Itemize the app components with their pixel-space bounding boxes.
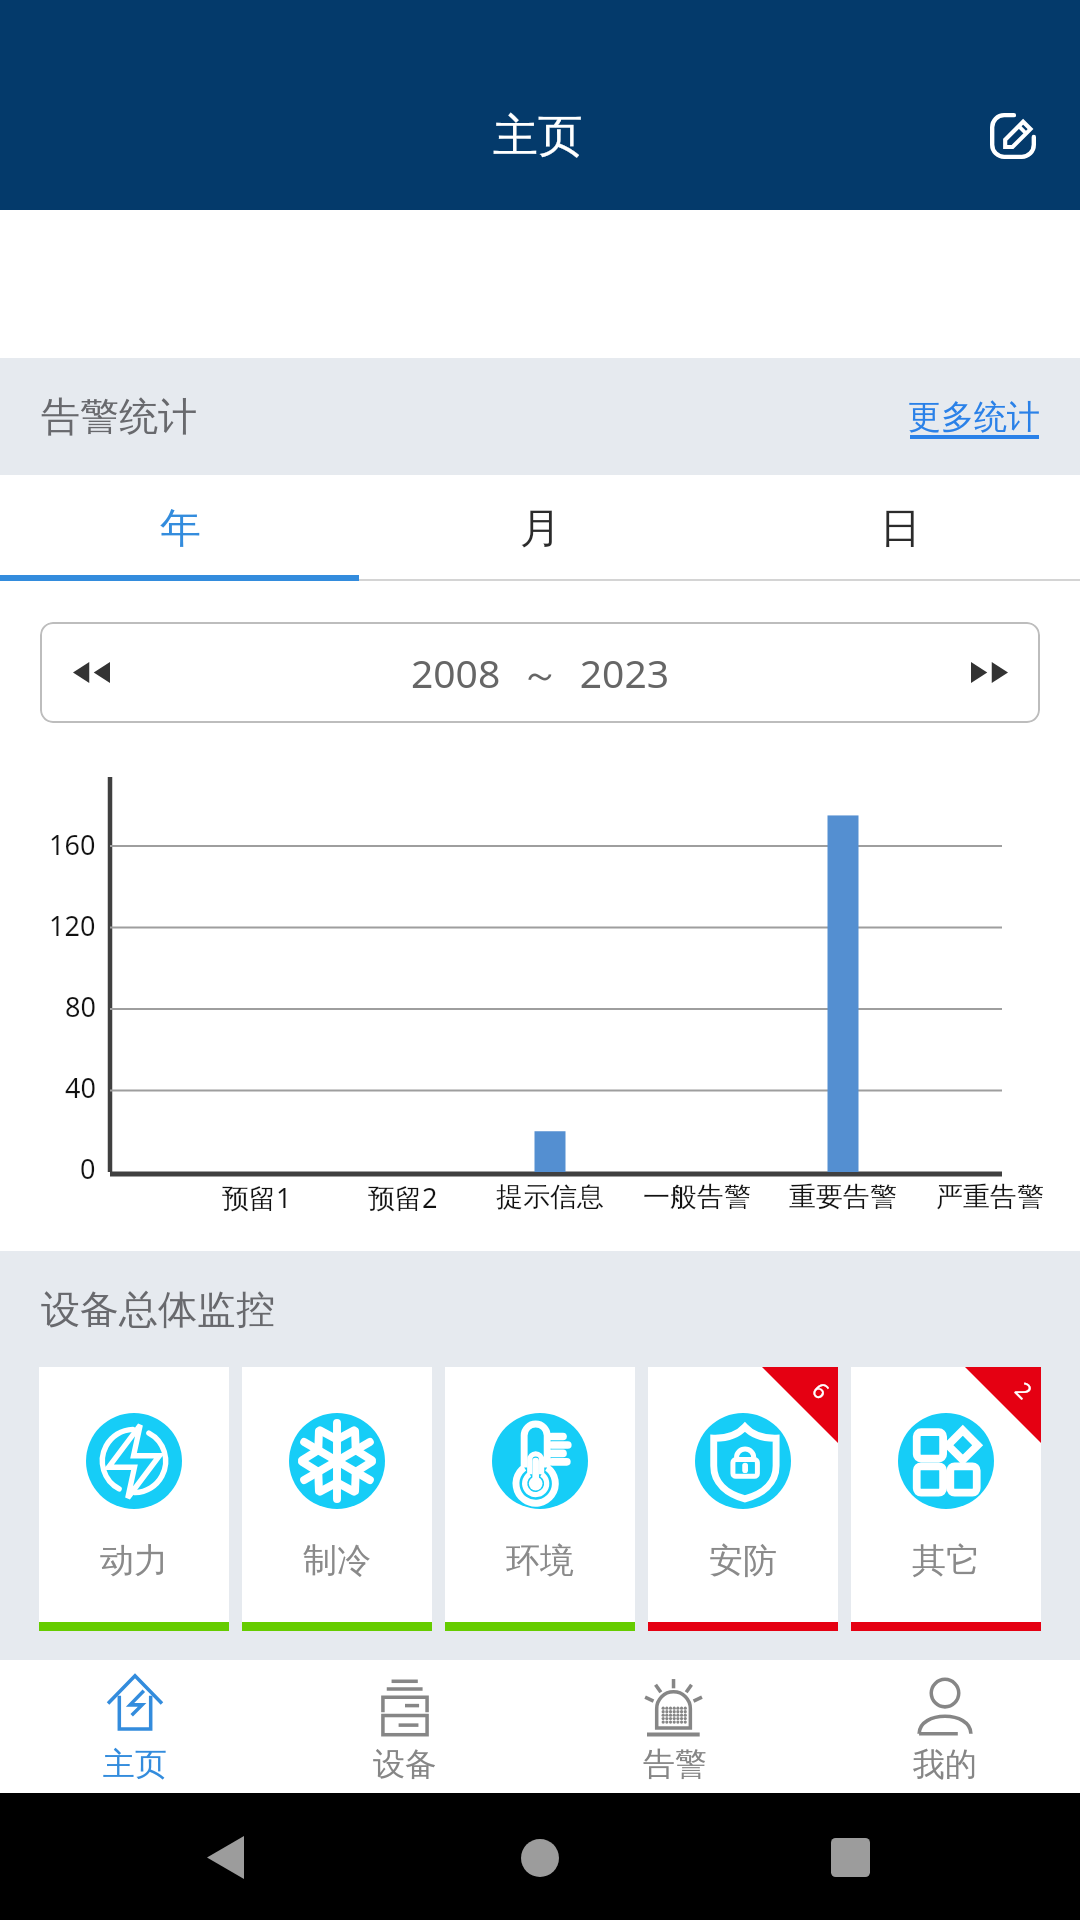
- staticText: 我的: [913, 1744, 977, 1784]
- button[interactable]: 月: [360, 475, 720, 581]
- staticText: 日: [880, 503, 921, 555]
- staticText: 其它: [912, 1539, 980, 1582]
- staticText: 0: [80, 1150, 96, 1187]
- staticText: 提示信息: [496, 1180, 604, 1214]
- staticText: 一般告警: [643, 1180, 751, 1214]
- button[interactable]: 日: [720, 475, 1080, 581]
- staticText: 月: [520, 503, 561, 555]
- staticText: 设备总体监控: [41, 1285, 275, 1334]
- staticText: 更多统计: [908, 396, 1040, 438]
- staticText: 年: [160, 503, 201, 555]
- staticText: 动力: [100, 1539, 168, 1582]
- staticText: 重要告警: [789, 1180, 897, 1214]
- staticText: 环境: [506, 1539, 574, 1582]
- staticText: 2008 ～ 2023: [411, 646, 670, 699]
- button[interactable]: Back: [180, 1812, 271, 1903]
- staticText: 80: [65, 988, 96, 1025]
- button[interactable]: 环境: [445, 1367, 635, 1631]
- button[interactable]: 告警: [540, 1660, 810, 1793]
- button[interactable]: Next range: [938, 622, 1040, 723]
- staticText: 120: [49, 907, 96, 944]
- button[interactable]: Previous range: [40, 622, 142, 723]
- button[interactable]: 动力: [39, 1367, 229, 1631]
- button[interactable]: Edit: [968, 91, 1058, 181]
- staticText: 告警: [643, 1744, 707, 1784]
- button[interactable]: Home: [494, 1812, 585, 1903]
- button[interactable]: 设备: [270, 1660, 540, 1793]
- staticText: 制冷: [303, 1539, 371, 1582]
- staticText: 6: [806, 1375, 837, 1405]
- staticText: 安防: [709, 1539, 777, 1582]
- staticText: 40: [65, 1069, 96, 1106]
- button[interactable]: 更多统计: [908, 396, 1040, 442]
- staticText: 严重告警: [936, 1180, 1044, 1214]
- staticText: 设备: [373, 1744, 437, 1784]
- staticText: 预留2: [368, 1179, 438, 1216]
- button[interactable]: 我的: [810, 1660, 1080, 1793]
- button[interactable]: 主页: [0, 1660, 270, 1793]
- button[interactable]: 制冷: [242, 1367, 432, 1631]
- staticText: 2: [1009, 1375, 1040, 1405]
- button[interactable]: 其它: [851, 1367, 1041, 1631]
- button[interactable]: Recent apps: [805, 1812, 896, 1903]
- staticText: 告警统计: [41, 392, 197, 441]
- staticText: 主页: [103, 1744, 167, 1784]
- button[interactable]: 安防: [648, 1367, 838, 1631]
- staticText: 主页: [493, 108, 583, 165]
- staticText: 预留1: [222, 1179, 292, 1216]
- staticText: 160: [49, 826, 96, 863]
- button[interactable]: Previous range: [40, 622, 1040, 723]
- button[interactable]: 年: [0, 475, 360, 581]
